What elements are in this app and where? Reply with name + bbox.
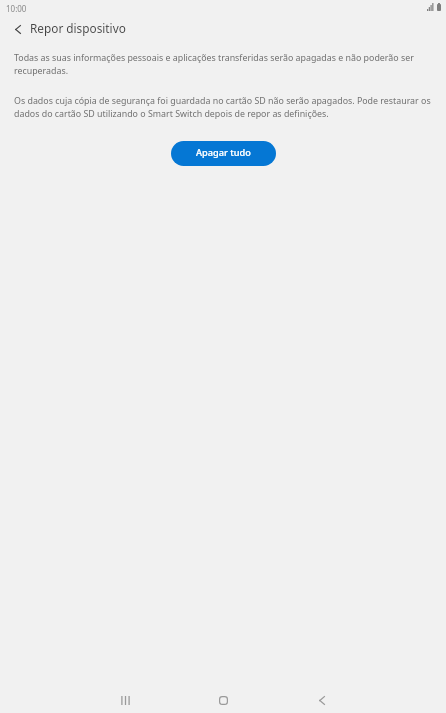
staticText: 10:00 bbox=[6, 3, 27, 14]
button[interactable]: Apagar tudo bbox=[171, 141, 276, 166]
button[interactable]: Recent apps bbox=[107, 687, 143, 713]
staticText: Todas as suas informações pessoais e apl… bbox=[14, 51, 444, 77]
staticText: Repor dispositivo bbox=[30, 20, 126, 36]
staticText: Apagar tudo bbox=[196, 146, 251, 159]
button[interactable]: Home bbox=[205, 687, 241, 713]
button[interactable]: Navigate up bbox=[3, 17, 33, 41]
staticText: Os dados cuja cópia de segurança foi gua… bbox=[14, 94, 444, 120]
button[interactable]: Back bbox=[304, 687, 340, 713]
